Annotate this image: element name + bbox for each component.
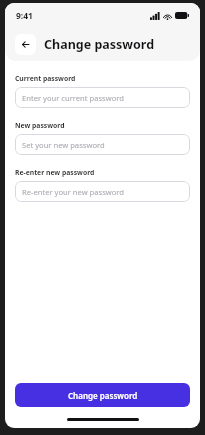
staticText: Change password bbox=[68, 390, 138, 401]
staticText: New password bbox=[15, 121, 65, 130]
staticText: Enter your current password bbox=[22, 93, 124, 103]
staticText: Change password bbox=[44, 36, 155, 53]
button[interactable]: Set your new password bbox=[15, 134, 190, 155]
button[interactable]: Change password bbox=[15, 383, 190, 407]
button[interactable]: Back bbox=[15, 34, 36, 55]
button[interactable]: Enter your current password bbox=[15, 87, 190, 108]
staticText: Set your new password bbox=[22, 140, 105, 150]
staticText: 9:41 bbox=[16, 10, 33, 22]
staticText: Re-enter new password bbox=[15, 168, 95, 177]
button[interactable]: Re-enter your new password bbox=[15, 181, 190, 202]
staticText: Current password bbox=[15, 74, 76, 83]
staticText: Re-enter your new password bbox=[22, 187, 125, 197]
